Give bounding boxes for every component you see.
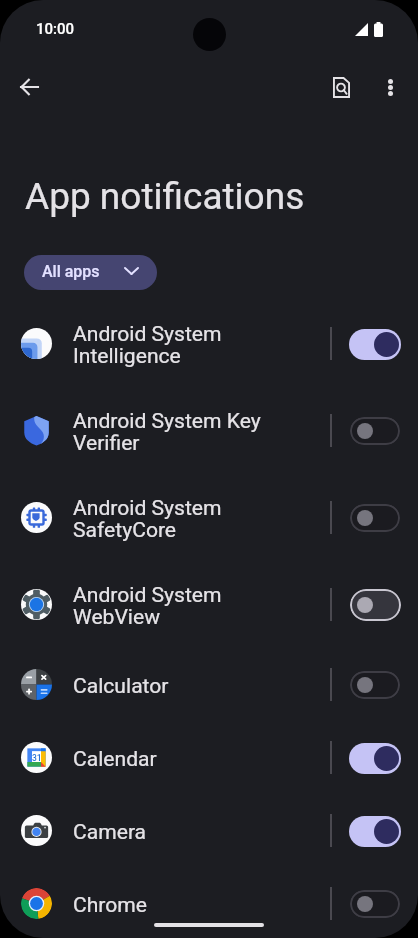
staticText: Calculator xyxy=(73,673,169,698)
button[interactable]: Calculator xyxy=(0,648,418,721)
staticText: Android System Intelligence xyxy=(73,321,272,368)
button[interactable]: Back xyxy=(5,63,53,111)
staticText: Android System SafetyCore xyxy=(73,495,272,542)
staticText: 10:00 xyxy=(36,20,75,38)
button[interactable]: All apps xyxy=(24,255,157,290)
button[interactable]: Notifications on xyxy=(349,742,401,774)
staticText: App notifications xyxy=(25,175,305,218)
staticText: All apps xyxy=(42,262,100,281)
staticText: Camera xyxy=(73,819,147,844)
button[interactable]: Android System Intelligence xyxy=(0,300,418,387)
button[interactable]: Search settings xyxy=(317,63,365,111)
button[interactable]: Notifications off xyxy=(349,669,401,701)
button[interactable]: More options xyxy=(366,63,414,111)
button[interactable]: Notifications off xyxy=(349,589,401,621)
staticText: 31 xyxy=(32,753,42,763)
button[interactable]: Notifications off xyxy=(349,415,401,447)
staticText: Calendar xyxy=(73,746,157,771)
staticText: Android System Key Verifier xyxy=(73,408,272,455)
button[interactable]: Android System WebView xyxy=(0,561,418,648)
button[interactable]: Android System Key Verifier xyxy=(0,387,418,474)
button[interactable]: Notifications on xyxy=(349,328,401,360)
button[interactable]: Camera xyxy=(0,794,418,867)
button[interactable]: Android System SafetyCore xyxy=(0,474,418,561)
button[interactable]: 31 xyxy=(0,721,418,794)
button[interactable]: Notifications on xyxy=(349,815,401,847)
button[interactable]: Notifications off xyxy=(349,502,401,534)
staticText: Android System WebView xyxy=(73,582,272,629)
button[interactable]: Chrome xyxy=(0,867,418,938)
button[interactable]: Notifications off xyxy=(349,888,401,920)
staticText: Chrome xyxy=(73,892,148,917)
